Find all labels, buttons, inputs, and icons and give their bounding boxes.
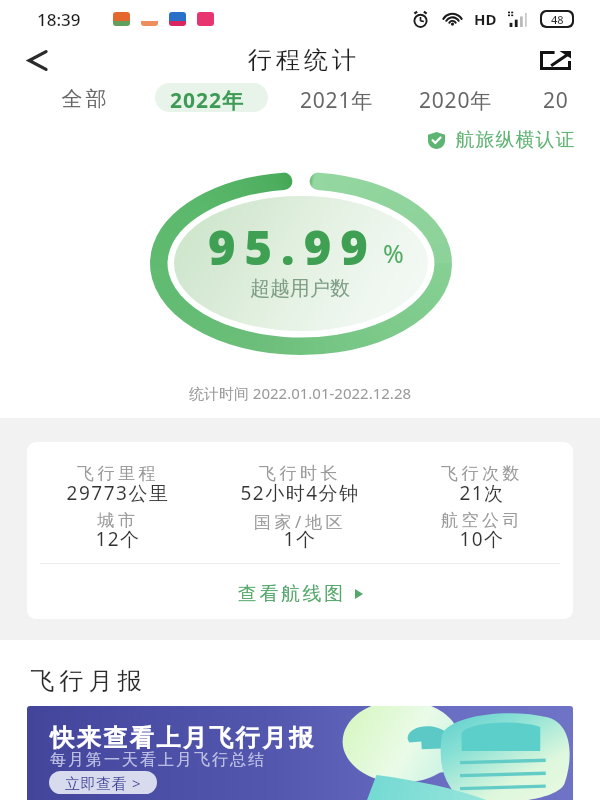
staticText: 快来查看上月飞行月报 xyxy=(49,723,314,753)
staticText: 95.99 xyxy=(208,215,377,279)
button[interactable]: Back xyxy=(13,36,61,84)
button[interactable]: 2021年 xyxy=(300,86,374,115)
staticText: 飞行里程 xyxy=(27,463,209,484)
staticText: 每月第一天看上月飞行总结 xyxy=(49,750,265,770)
staticText: 20 xyxy=(543,86,569,115)
button[interactable]: 全部 xyxy=(60,86,108,112)
staticText: 飞行时长 xyxy=(209,463,391,484)
staticText: 飞行月报 xyxy=(28,666,144,696)
staticText: 航旅纵横认证 xyxy=(455,128,575,152)
button[interactable]: 查看航线图 xyxy=(27,566,573,619)
staticText: 52小时4分钟 xyxy=(209,480,391,506)
staticText: 航空公司 xyxy=(391,510,573,531)
staticText: 立即查看 > xyxy=(65,773,142,793)
staticText: 18:39 xyxy=(37,8,81,31)
button[interactable]: 立即查看 > xyxy=(49,771,157,794)
button[interactable]: Share xyxy=(534,39,576,81)
staticText: 12个 xyxy=(27,526,209,552)
staticText: 飞行次数 xyxy=(391,463,573,484)
button[interactable]: 2020年 xyxy=(419,86,493,115)
staticText: 城市 xyxy=(27,510,209,531)
staticText: 29773公里 xyxy=(27,480,209,506)
staticText: 21次 xyxy=(391,480,573,506)
staticText: 10个 xyxy=(391,526,573,552)
staticText: 国家/地区 xyxy=(209,510,391,533)
staticText: HD xyxy=(474,9,497,29)
staticText: 查看航线图 xyxy=(238,582,346,606)
staticText: 1个 xyxy=(209,526,391,552)
staticText: 48 xyxy=(551,12,564,26)
staticText: 超越用户数 xyxy=(0,276,600,301)
staticText: % xyxy=(383,236,404,270)
staticText: 行程统计 xyxy=(246,45,358,75)
button[interactable]: 2022年 xyxy=(170,86,245,115)
staticText: 统计时间 2022.01.01-2022.12.28 xyxy=(0,383,600,403)
button[interactable] xyxy=(155,83,268,112)
button[interactable]: 快来查看上月飞行月报 xyxy=(27,706,573,800)
